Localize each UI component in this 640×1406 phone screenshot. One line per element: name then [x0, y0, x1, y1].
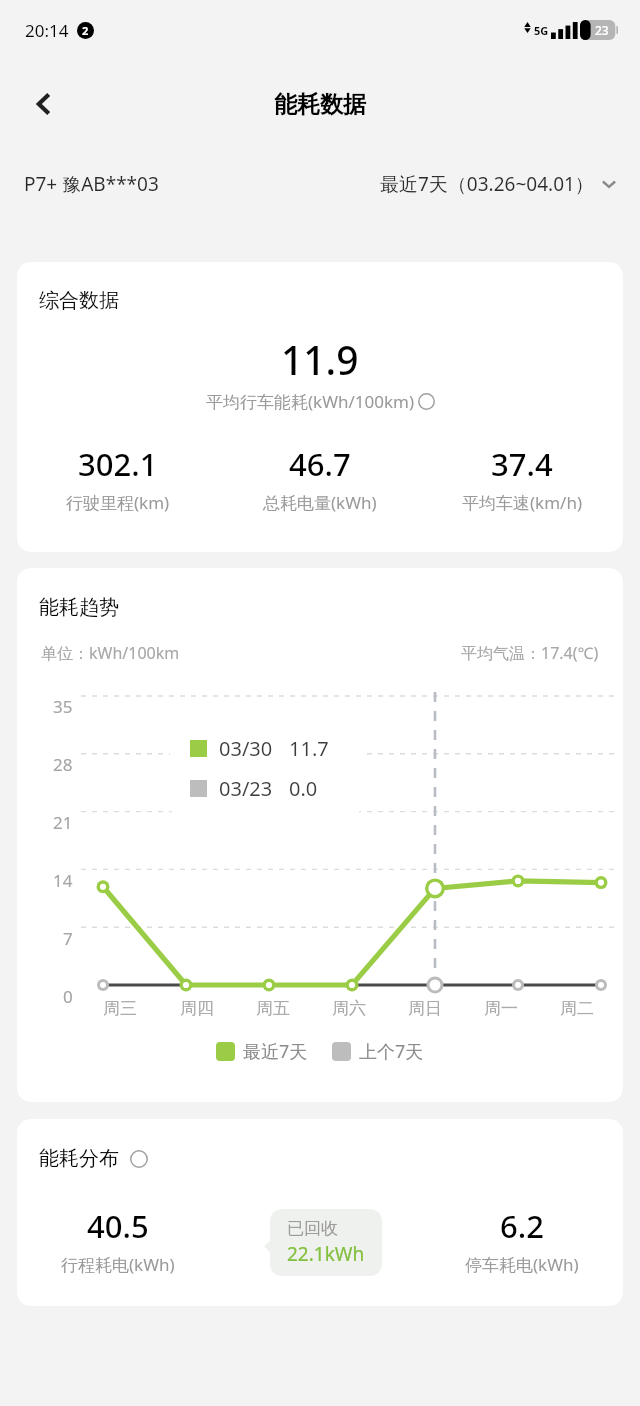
staticText: 能耗分布 — [39, 1146, 119, 1171]
button[interactable]: P7+ 豫AB***03 — [24, 171, 159, 197]
staticText: 23 — [595, 22, 609, 38]
staticText: 周五 — [256, 998, 290, 1019]
staticText: 平均行车能耗(kWh/100km) — [206, 390, 415, 413]
staticText: 已回收 — [287, 1218, 338, 1239]
staticText: 周一 — [484, 998, 518, 1019]
staticText: 0.0 — [289, 775, 318, 802]
staticText: 14 — [53, 869, 73, 892]
staticText: 2 — [82, 23, 89, 38]
staticText: 11.7 — [289, 735, 329, 762]
staticText: 周四 — [180, 998, 214, 1019]
staticText: 周二 — [560, 998, 594, 1019]
button[interactable]: 帮助 — [129, 1149, 149, 1169]
staticText: 停车耗电(kWh) — [465, 1253, 579, 1276]
staticText: 行驶里程(km) — [66, 491, 170, 514]
staticText: 28 — [53, 753, 73, 776]
staticText: 40.5 — [87, 1205, 149, 1247]
staticText: 7 — [63, 927, 73, 950]
staticText: 37.4 — [491, 443, 553, 485]
staticText: 20:14 — [25, 19, 69, 42]
staticText: 周六 — [332, 998, 366, 1019]
staticText: 03/30 — [219, 735, 273, 762]
staticText: 平均车速(km/h) — [462, 491, 583, 514]
staticText: 35 — [53, 695, 73, 718]
staticText: 03/23 — [219, 775, 273, 802]
staticText: 能耗趋势 — [39, 595, 119, 620]
button[interactable]: 最近7天（03.26~04.01） — [380, 171, 618, 197]
staticText: 上个7天 — [359, 1039, 424, 1064]
staticText: 行程耗电(kWh) — [61, 1253, 175, 1276]
staticText: 能耗数据 — [274, 90, 366, 119]
button[interactable]: 上个7天 — [332, 1039, 424, 1064]
staticText: 6.2 — [500, 1205, 544, 1247]
button[interactable]: 最近7天 — [216, 1039, 308, 1064]
staticText: 综合数据 — [39, 288, 119, 313]
staticText: 11.9 — [281, 333, 359, 386]
staticText: 22.1kWh — [287, 1241, 365, 1267]
staticText: 21 — [53, 811, 73, 834]
staticText: 46.7 — [289, 443, 351, 485]
staticText: 周三 — [103, 998, 137, 1019]
staticText: 302.1 — [78, 443, 158, 485]
staticText: 平均气温：17.4(℃) — [461, 642, 599, 664]
staticText: 最近7天（03.26~04.01） — [380, 171, 594, 197]
staticText: 5G — [534, 23, 549, 38]
button[interactable]: Back — [18, 78, 70, 130]
staticText: 周日 — [408, 998, 442, 1019]
staticText: 总耗电量(kWh) — [263, 491, 377, 514]
staticText: 0 — [63, 985, 73, 1008]
staticText: 单位：kWh/100km — [41, 642, 180, 664]
staticText: 最近7天 — [243, 1039, 308, 1064]
